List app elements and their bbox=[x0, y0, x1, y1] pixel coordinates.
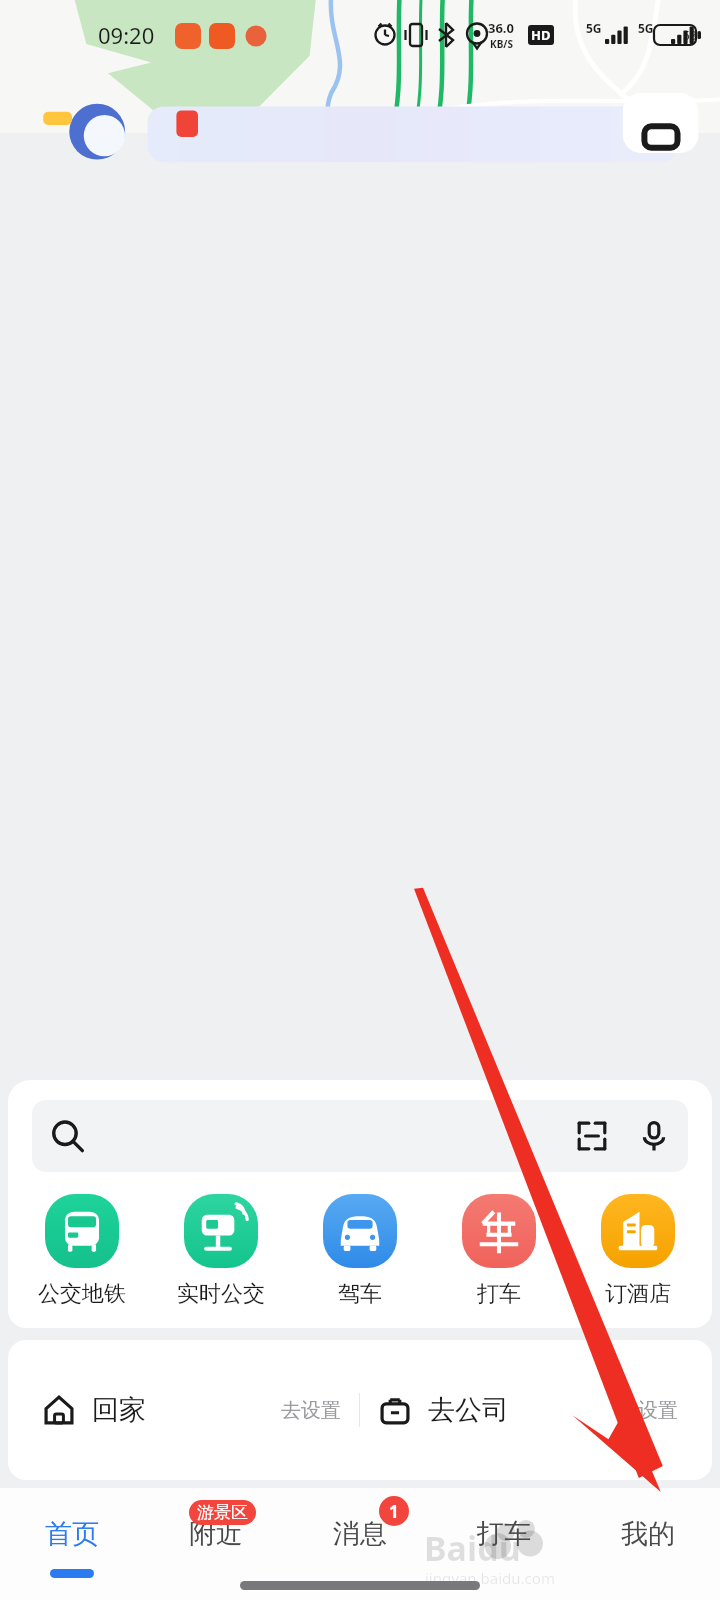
staticText: 首页 bbox=[45, 1517, 99, 1551]
button[interactable]: 驾车 bbox=[300, 1194, 420, 1308]
staticText: 1 bbox=[389, 1500, 399, 1523]
staticText: 36.0 bbox=[488, 19, 514, 37]
staticText: 去公司 bbox=[428, 1393, 509, 1427]
button[interactable]: Voice search bbox=[638, 1120, 670, 1152]
staticText: Baidu bbox=[424, 1525, 521, 1571]
button[interactable]: 实时公交 bbox=[161, 1194, 281, 1308]
staticText: 打车 bbox=[477, 1517, 531, 1551]
staticText: 游景区 bbox=[197, 1502, 248, 1523]
staticText: 实时公交 bbox=[177, 1280, 265, 1308]
button[interactable]: 打车 bbox=[439, 1194, 559, 1308]
staticText: 去设置 bbox=[618, 1398, 678, 1423]
button[interactable]: 订酒店 bbox=[578, 1194, 698, 1308]
staticText: 53 bbox=[683, 27, 697, 43]
button[interactable]: 打车 bbox=[432, 1488, 576, 1600]
button[interactable]: Scan bbox=[576, 1120, 608, 1152]
staticText: 回家 bbox=[92, 1393, 146, 1427]
staticText: 消息 bbox=[333, 1517, 387, 1551]
button[interactable]: 附近 bbox=[144, 1488, 288, 1600]
staticText: 附近 bbox=[189, 1517, 243, 1551]
staticText: 09:20 bbox=[98, 20, 155, 50]
button[interactable]: 去公司 bbox=[360, 1393, 678, 1427]
button[interactable]: 我的 bbox=[576, 1488, 720, 1600]
staticText: jingyan.baidu.com bbox=[425, 1568, 555, 1588]
staticText: 公交地铁 bbox=[38, 1280, 126, 1308]
staticText: 去设置 bbox=[281, 1398, 341, 1423]
staticText: 我的 bbox=[621, 1517, 675, 1551]
button[interactable]: 公交地铁 bbox=[22, 1194, 142, 1308]
staticText: HD bbox=[531, 26, 551, 44]
staticText: 打车 bbox=[477, 1280, 521, 1308]
staticText: 5G bbox=[586, 20, 602, 36]
staticText: KB/S bbox=[490, 37, 513, 51]
button[interactable]: 首页 bbox=[0, 1488, 144, 1600]
button[interactable]: 回家 bbox=[42, 1393, 359, 1427]
staticText: 订酒店 bbox=[605, 1280, 671, 1308]
other: Search bbox=[50, 1119, 84, 1153]
staticText: 驾车 bbox=[338, 1280, 382, 1308]
button[interactable]: Search bbox=[32, 1100, 688, 1172]
staticText: 5G bbox=[638, 20, 654, 36]
button[interactable]: 消息 bbox=[288, 1488, 432, 1600]
